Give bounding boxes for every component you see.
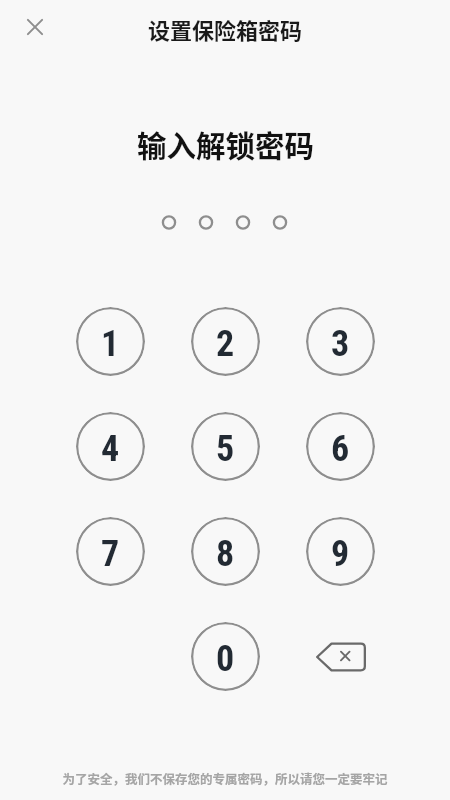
button[interactable]: 9 (306, 517, 375, 586)
button[interactable]: 1 (76, 307, 145, 376)
button[interactable]: 3 (306, 307, 375, 376)
button[interactable]: 2 (191, 307, 260, 376)
staticText: 4 (101, 428, 120, 470)
staticText: 2 (216, 323, 235, 365)
staticText: 为了安全，我们不保存您的专属密码，所以请您一定要牢记 (62, 769, 388, 787)
staticText: 6 (331, 428, 350, 470)
staticText: 5 (216, 428, 235, 470)
button[interactable]: 5 (191, 412, 260, 481)
staticText: 9 (331, 533, 350, 575)
staticText: 1 (101, 323, 120, 365)
staticText: 7 (101, 533, 120, 575)
staticText: 8 (216, 533, 235, 575)
button[interactable]: 4 (76, 412, 145, 481)
staticText: 输入解锁密码 (137, 123, 315, 166)
button[interactable]: Backspace (306, 622, 375, 691)
staticText: 3 (331, 323, 350, 365)
staticText: 0 (216, 638, 235, 680)
button[interactable]: 8 (191, 517, 260, 586)
button[interactable]: Close (11, 3, 59, 51)
button[interactable]: 6 (306, 412, 375, 481)
staticText: 设置保险箱密码 (148, 13, 303, 45)
button[interactable]: 0 (191, 622, 260, 691)
button[interactable]: 7 (76, 517, 145, 586)
